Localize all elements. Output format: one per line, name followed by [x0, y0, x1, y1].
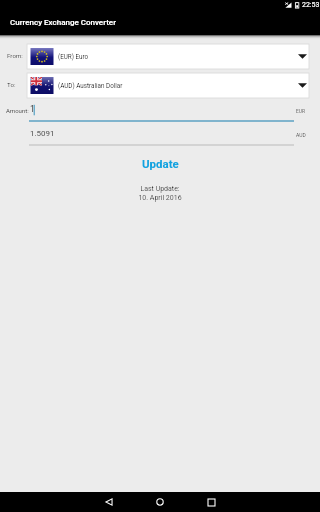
button[interactable]: 1.5091	[30, 123, 294, 147]
staticText: (EUR) Euro	[58, 53, 89, 60]
staticText: Last Update:	[140, 185, 180, 193]
staticText: 22:53	[302, 1, 320, 9]
staticText: 1.5091	[30, 129, 55, 138]
button[interactable]: Update	[128, 155, 193, 172]
button[interactable]: (EUR) Euro	[27, 44, 309, 69]
button[interactable]: Home	[137, 492, 183, 512]
staticText: Currency Exchange Converter	[10, 18, 116, 27]
staticText: (AUD) Australian Dollar	[58, 82, 123, 89]
staticText: AUD	[296, 132, 306, 138]
staticText: EUR	[296, 108, 306, 114]
button[interactable]: 1	[30, 99, 294, 123]
staticText: From:	[7, 52, 23, 59]
staticText: To:	[7, 81, 16, 88]
staticText: Update	[142, 157, 179, 170]
button[interactable]: Recents	[188, 492, 234, 512]
staticText: Amount:	[6, 107, 29, 114]
staticText: 10. April 2016	[138, 194, 182, 202]
button[interactable]: (AUD) Australian Dollar	[27, 73, 309, 98]
button[interactable]: Back	[86, 492, 132, 512]
staticText: 1	[30, 104, 35, 114]
